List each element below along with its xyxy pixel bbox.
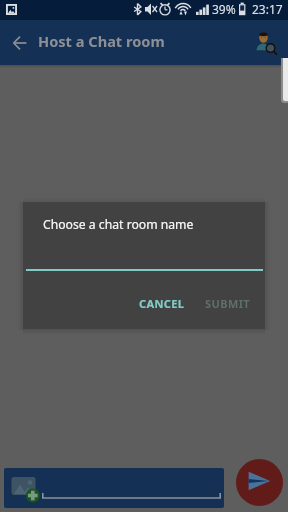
button[interactable]: SUBMIT bbox=[197, 291, 259, 316]
button[interactable] bbox=[42, 488, 221, 499]
staticText: Host a Chat room bbox=[38, 31, 165, 51]
staticText: CANCEL bbox=[139, 296, 185, 311]
staticText: SUBMIT bbox=[205, 296, 251, 311]
button[interactable]: Send message bbox=[236, 459, 283, 506]
staticText: 39% bbox=[212, 1, 236, 17]
staticText: Choose a chat room name bbox=[43, 216, 194, 233]
button[interactable]: Navigate up bbox=[8, 31, 31, 54]
button[interactable]: CANCEL bbox=[131, 291, 193, 316]
button[interactable]: Attach image bbox=[6, 474, 44, 508]
button[interactable]: Search people bbox=[250, 25, 284, 59]
staticText: 23:17 bbox=[252, 1, 283, 17]
